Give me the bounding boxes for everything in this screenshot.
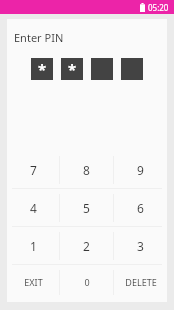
staticText: 2	[83, 238, 90, 254]
staticText: 9	[137, 162, 144, 178]
button[interactable]: DELETE	[114, 265, 167, 299]
button[interactable]: EXIT	[7, 265, 59, 299]
staticText: *	[68, 59, 77, 79]
staticText: 05:20	[148, 2, 169, 13]
button[interactable]: 3	[114, 227, 167, 264]
button[interactable]: *	[31, 58, 53, 80]
button[interactable]: 2	[60, 227, 113, 264]
staticText: 4	[30, 200, 37, 216]
button[interactable]: 1	[7, 227, 59, 264]
staticText: 0	[84, 276, 90, 288]
staticText: 3	[137, 238, 144, 254]
staticText: DELETE	[125, 276, 157, 288]
staticText: 8	[83, 162, 90, 178]
button[interactable]: *	[61, 58, 83, 80]
button[interactable]: 0	[60, 265, 113, 299]
button[interactable]: 8	[60, 151, 113, 188]
other: Battery	[140, 3, 145, 12]
staticText: 7	[30, 162, 37, 178]
staticText: *	[38, 59, 47, 79]
button[interactable]: 4	[7, 189, 59, 226]
button[interactable]: 6	[114, 189, 167, 226]
staticText: 6	[137, 200, 144, 216]
staticText: EXIT	[24, 276, 43, 288]
button[interactable]: 5	[60, 189, 113, 226]
button[interactable]: 9	[114, 151, 167, 188]
button[interactable]: 7	[7, 151, 59, 188]
staticText: 5	[83, 200, 90, 216]
staticText: Enter PIN	[14, 30, 64, 45]
staticText: 1	[30, 238, 37, 254]
